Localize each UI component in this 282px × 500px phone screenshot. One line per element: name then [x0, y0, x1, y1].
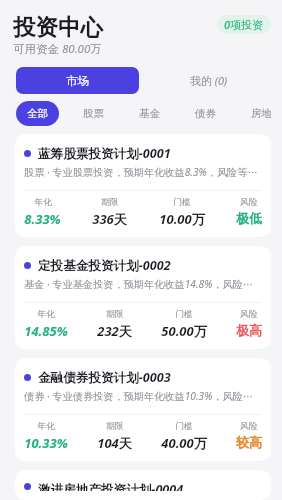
- staticText: 激进房地产投资计划-0004: [38, 481, 184, 491]
- staticText: 40.00万: [161, 434, 207, 452]
- button[interactable]: 全部: [16, 101, 59, 126]
- button[interactable]: 股票: [72, 101, 115, 126]
- staticText: 房地产: [251, 107, 271, 120]
- staticText: 风险: [240, 197, 258, 208]
- staticText: 年化: [34, 197, 52, 208]
- staticText: 50.00万: [161, 322, 207, 340]
- staticText: 期限: [106, 309, 124, 320]
- staticText: 债券 · 专业债券投资，预期年化收益10.3%，风险等级较高: [24, 389, 262, 403]
- button[interactable]: 债券: [184, 101, 227, 126]
- staticText: 债券: [195, 107, 216, 120]
- staticText: 全部: [27, 107, 48, 120]
- staticText: 风险: [240, 309, 258, 320]
- button[interactable]: 房地产: [240, 101, 282, 126]
- staticText: 定投基金投资计划-0002: [38, 257, 171, 274]
- staticText: 极低: [236, 210, 262, 226]
- staticText: 10.00万: [159, 210, 205, 228]
- staticText: 期限: [101, 197, 119, 208]
- staticText: 期限: [106, 421, 124, 432]
- staticText: 门槛: [173, 197, 191, 208]
- button[interactable]: 市场: [16, 67, 139, 94]
- button[interactable]: 0项投资: [217, 15, 271, 34]
- button[interactable]: 激进房地产投资计划-0004: [15, 470, 271, 500]
- button[interactable]: 蓝筹股票投资计划-0001: [15, 134, 271, 237]
- staticText: 8.33%: [24, 210, 61, 228]
- staticText: 104天: [97, 434, 132, 452]
- staticText: 232天: [97, 322, 132, 340]
- staticText: 金融债券投资计划-0003: [38, 369, 171, 386]
- staticText: 极高: [236, 322, 262, 338]
- staticText: 门槛: [175, 421, 193, 432]
- button[interactable]: 金融债券投资计划-0003: [15, 358, 271, 461]
- staticText: 门槛: [175, 309, 193, 320]
- staticText: 0项投资: [224, 17, 264, 32]
- staticText: 年化: [37, 421, 55, 432]
- staticText: 投资中心: [13, 13, 103, 41]
- staticText: 我的 (0): [190, 73, 228, 88]
- staticText: 蓝筹股票投资计划-0001: [38, 145, 171, 162]
- staticText: 较高: [236, 434, 262, 450]
- staticText: 可用资金 80.00万: [13, 41, 102, 57]
- button[interactable]: 我的 (0): [147, 67, 271, 94]
- staticText: 风险: [240, 421, 258, 432]
- staticText: 336天: [92, 210, 127, 228]
- staticText: 基金: [139, 107, 160, 120]
- staticText: 年化: [37, 309, 55, 320]
- button[interactable]: 基金: [128, 101, 171, 126]
- button[interactable]: 定投基金投资计划-0002: [15, 246, 271, 349]
- staticText: 14.85%: [24, 322, 68, 340]
- staticText: 股票: [83, 107, 104, 120]
- staticText: 基金 · 专业基金投资，预期年化收益14.8%，风险等级极高: [24, 277, 262, 291]
- staticText: 10.33%: [24, 434, 68, 452]
- staticText: 市场: [66, 74, 89, 88]
- staticText: 股票 · 专业股票投资，预期年化收益8.3%，风险等级极低: [24, 165, 262, 179]
